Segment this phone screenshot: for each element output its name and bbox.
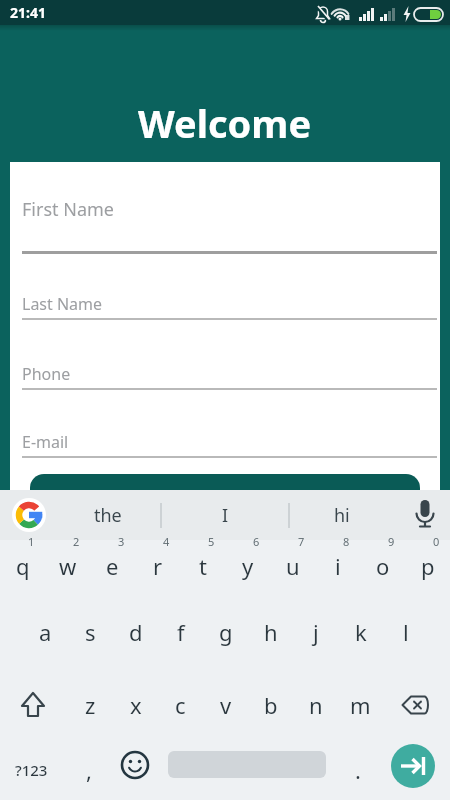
staticText: j xyxy=(313,617,319,647)
staticText: 3 xyxy=(118,534,125,549)
staticText: 21:41 xyxy=(10,3,46,22)
staticText: I xyxy=(222,503,229,528)
staticText: 9 xyxy=(388,534,395,549)
button[interactable]: w xyxy=(45,540,90,605)
staticText: Welcome xyxy=(138,97,312,149)
button[interactable]: c xyxy=(158,670,203,735)
staticText: o xyxy=(376,551,390,581)
button[interactable]: ?123 xyxy=(0,735,62,800)
button[interactable]: hi xyxy=(289,490,395,540)
staticText: t xyxy=(199,551,207,581)
button[interactable]: p xyxy=(405,540,450,605)
button[interactable]: k xyxy=(338,605,383,670)
staticText: r xyxy=(153,551,163,581)
staticText: 5 xyxy=(208,534,215,549)
button[interactable]: z xyxy=(67,670,113,735)
button[interactable]: y xyxy=(225,540,270,605)
staticText: g xyxy=(219,617,233,647)
button[interactable]: q xyxy=(0,540,45,605)
button[interactable] xyxy=(0,670,67,735)
button[interactable] xyxy=(30,474,420,498)
button[interactable]: l xyxy=(383,605,428,670)
staticText: l xyxy=(403,617,409,647)
button[interactable]: the xyxy=(55,490,161,540)
button[interactable]: m xyxy=(338,670,383,735)
staticText: v xyxy=(220,690,232,720)
staticText: 7 xyxy=(298,534,305,549)
staticText: Last Name xyxy=(22,293,103,315)
staticText: m xyxy=(350,690,371,720)
staticText: z xyxy=(85,690,96,720)
staticText: k xyxy=(355,617,367,647)
staticText: . xyxy=(355,755,361,785)
staticText: the xyxy=(94,503,122,528)
button[interactable]: t xyxy=(180,540,225,605)
staticText: w xyxy=(59,551,77,581)
staticText: 1 xyxy=(28,534,35,549)
staticText: 6 xyxy=(253,534,260,549)
staticText: , xyxy=(86,755,92,785)
staticText: a xyxy=(39,617,52,647)
button[interactable]: n xyxy=(293,670,338,735)
staticText: ?123 xyxy=(15,760,48,780)
staticText: Phone xyxy=(22,363,71,385)
staticText: n xyxy=(309,690,323,720)
button[interactable] xyxy=(116,735,158,800)
button[interactable]: f xyxy=(158,605,203,670)
button[interactable]: , xyxy=(62,735,116,800)
staticText: s xyxy=(85,617,96,647)
staticText: x xyxy=(130,690,142,720)
button[interactable]: . xyxy=(330,735,386,800)
button[interactable]: v xyxy=(203,670,248,735)
button[interactable]: b xyxy=(248,670,293,735)
staticText: i xyxy=(335,551,341,581)
button[interactable] xyxy=(12,498,46,532)
staticText: 0 xyxy=(433,534,440,549)
staticText: First Name xyxy=(22,197,114,222)
button[interactable]: e xyxy=(90,540,135,605)
staticText: 8 xyxy=(343,534,350,549)
button[interactable] xyxy=(386,735,450,800)
staticText: f xyxy=(177,617,185,647)
button[interactable]: u xyxy=(270,540,315,605)
staticText: 4 xyxy=(163,534,170,549)
staticText: q xyxy=(16,551,30,581)
staticText: h xyxy=(264,617,278,647)
button[interactable]: h xyxy=(248,605,293,670)
button[interactable]: o xyxy=(360,540,405,605)
button[interactable]: r xyxy=(135,540,180,605)
button[interactable]: i xyxy=(315,540,360,605)
staticText: c xyxy=(175,690,186,720)
button[interactable] xyxy=(383,670,450,735)
staticText: b xyxy=(264,690,278,720)
staticText: hi xyxy=(334,503,350,528)
button[interactable]: s xyxy=(68,605,113,670)
staticText: u xyxy=(286,551,300,581)
button[interactable]: d xyxy=(113,605,158,670)
button[interactable]: g xyxy=(203,605,248,670)
button[interactable]: a xyxy=(22,605,68,670)
button[interactable]: x xyxy=(113,670,158,735)
staticText: e xyxy=(106,551,119,581)
staticText: y xyxy=(242,551,254,581)
staticText: p xyxy=(421,551,435,581)
staticText: E-mail xyxy=(22,431,69,453)
button[interactable]: I xyxy=(161,490,289,540)
button[interactable]: j xyxy=(293,605,338,670)
button[interactable] xyxy=(168,735,326,800)
staticText: d xyxy=(129,617,143,647)
staticText: 2 xyxy=(73,534,80,549)
